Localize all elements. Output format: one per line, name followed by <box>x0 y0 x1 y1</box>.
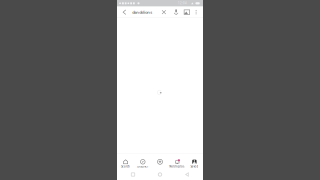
button[interactable]: Discover <box>134 154 151 169</box>
button[interactable]: Recent apps <box>119 173 146 176</box>
staticText: 12:04 <box>178 1 187 5</box>
staticText: dandelions <box>132 9 152 15</box>
button[interactable]: Voice search <box>172 7 180 18</box>
button[interactable]: Back <box>173 172 200 177</box>
button[interactable]: Notifications <box>169 154 186 169</box>
button[interactable] <box>151 154 169 169</box>
button[interactable]: Clear search <box>160 7 167 18</box>
staticText: Saved <box>190 165 198 168</box>
button[interactable]: Home <box>146 173 173 176</box>
button[interactable]: Google Lens <box>183 7 190 18</box>
staticText: Search <box>121 165 130 168</box>
staticText: Discover <box>137 165 148 168</box>
staticText: Notifications <box>169 165 185 172</box>
button[interactable]: Saved <box>186 154 203 169</box>
button[interactable]: More options <box>193 7 199 18</box>
button[interactable]: Back <box>120 7 129 18</box>
button[interactable]: Search <box>117 154 134 169</box>
